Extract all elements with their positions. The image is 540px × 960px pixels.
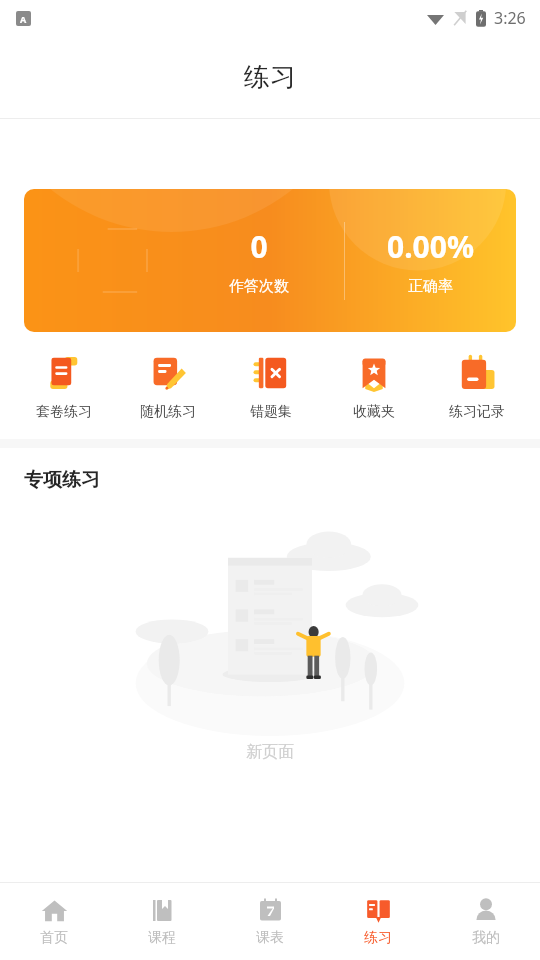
button[interactable]: 错题集 [219,350,322,423]
staticText: 作答次数 [229,277,289,296]
staticText: A [20,13,27,25]
staticText: 首页 [40,929,68,947]
button[interactable]: 课程 [108,883,216,960]
staticText: 课表 [256,929,284,947]
button[interactable]: 随机练习 [116,350,219,423]
button[interactable]: 课表 [216,883,324,960]
staticText: 练习 [364,929,392,947]
staticText: 随机练习 [140,403,196,421]
staticText: 我的 [472,929,500,947]
staticText: 收藏夹 [353,403,395,421]
staticText: 新页面 [246,742,294,762]
button[interactable]: 我的 [432,883,540,960]
staticText: 正确率 [408,277,453,296]
button[interactable]: 0 [24,189,516,332]
button[interactable]: 首页 [0,883,108,960]
staticText: 0.00% [387,226,474,267]
button[interactable]: 练习 [324,883,432,960]
button[interactable]: 收藏夹 [322,350,425,423]
staticText: 课程 [148,929,176,947]
button[interactable]: 套卷练习 [12,350,116,423]
staticText: 套卷练习 [36,403,92,421]
button[interactable]: 练习记录 [425,350,528,423]
staticText: 3:26 [494,7,526,29]
staticText: 0 [250,226,268,267]
staticText: 练习记录 [449,403,505,421]
staticText: 练习 [244,61,296,94]
staticText: 专项练习 [24,468,100,492]
staticText: 错题集 [250,403,292,421]
